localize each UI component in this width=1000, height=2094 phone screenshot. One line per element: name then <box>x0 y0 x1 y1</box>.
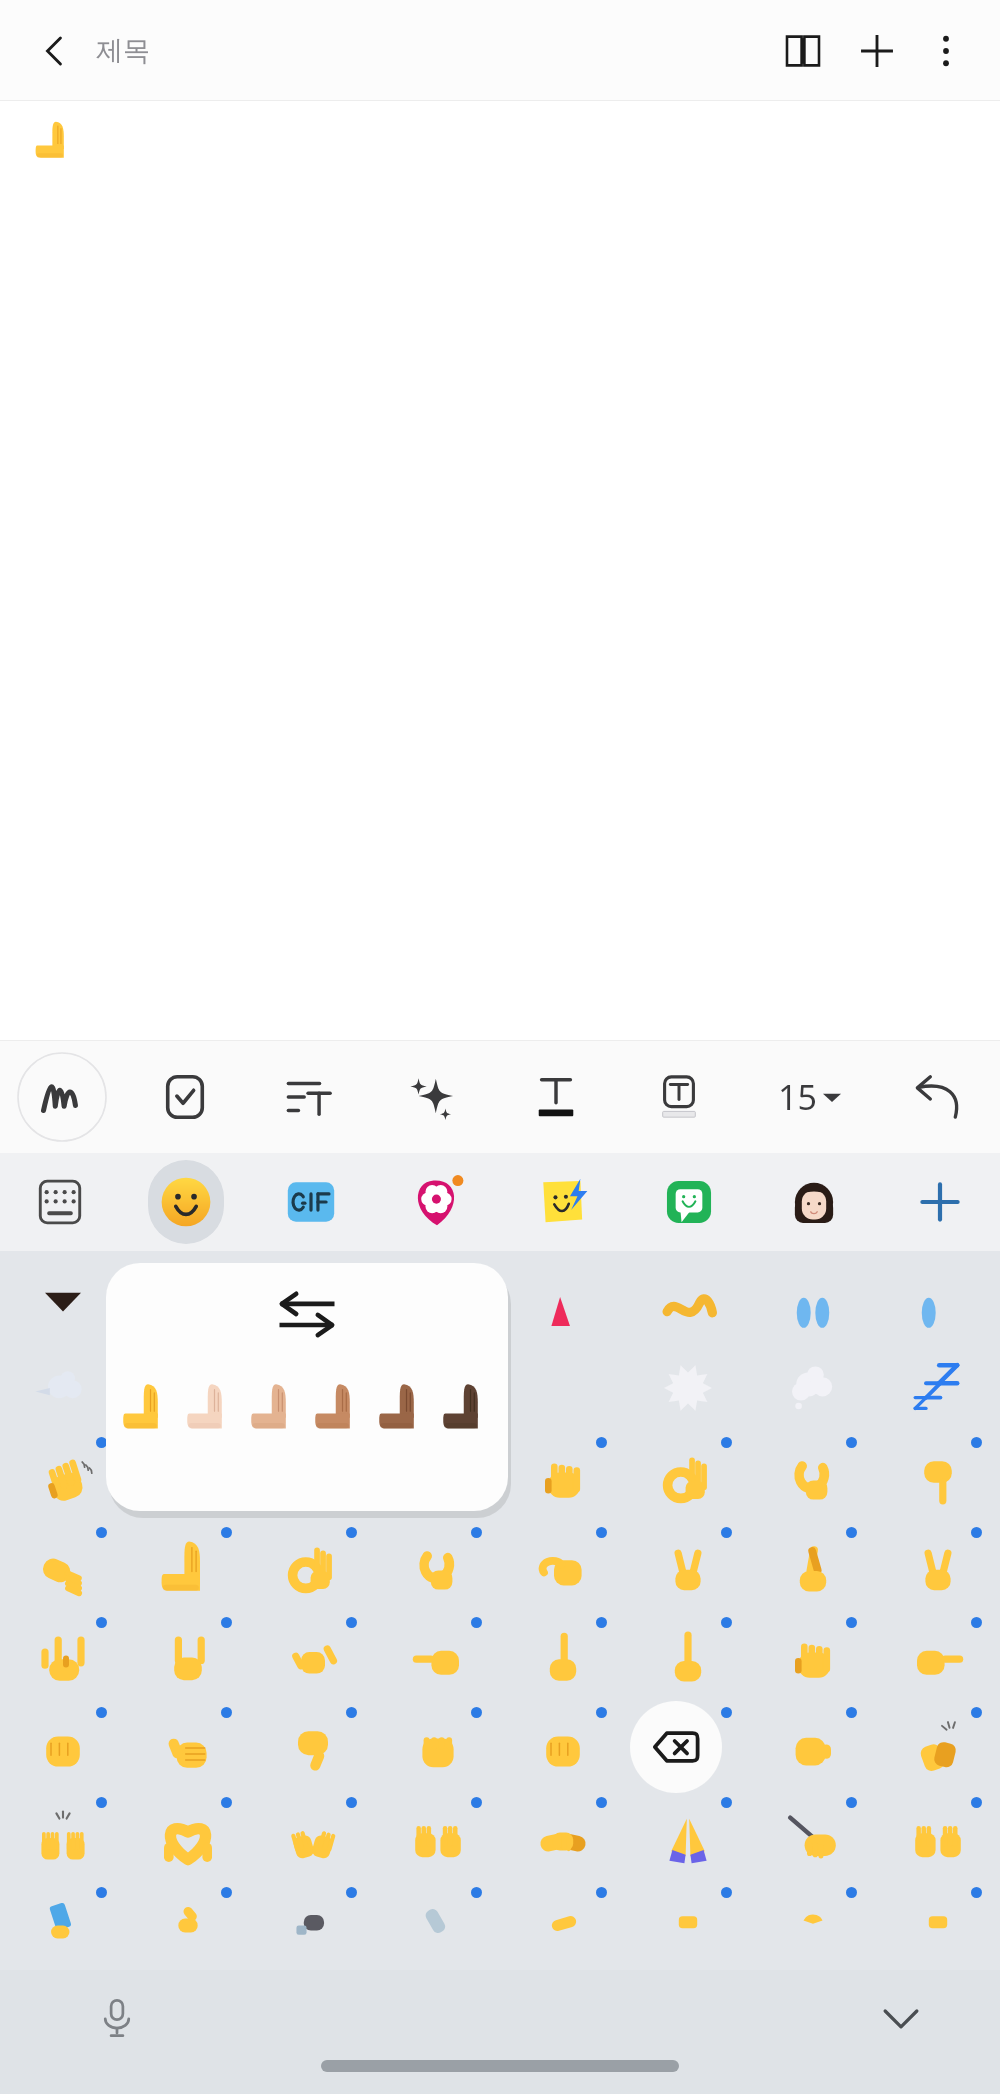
button[interactable]: Hide keyboard <box>864 1981 938 2055</box>
button[interactable]: Emoji <box>375 1613 500 1703</box>
button[interactable]: Emoji <box>750 1613 875 1703</box>
button[interactable]: Skin tone <box>372 1371 434 1445</box>
button[interactable]: Emoji <box>375 1703 500 1793</box>
button[interactable]: Emoji <box>250 1433 375 1523</box>
button[interactable]: Emoji <box>125 1613 250 1703</box>
button[interactable]: Emoji <box>875 1703 1000 1793</box>
button[interactable] <box>250 1257 375 1343</box>
button[interactable]: AR Emoji <box>776 1160 852 1244</box>
button[interactable] <box>750 1257 875 1343</box>
staticText: 15 <box>778 1074 817 1120</box>
button[interactable]: Emoji <box>375 1793 500 1883</box>
button[interactable]: Emoji <box>500 1883 625 1957</box>
button[interactable]: Skin tone <box>436 1371 498 1445</box>
button[interactable] <box>0 1257 125 1343</box>
button[interactable]: Emoji <box>750 1523 875 1613</box>
button[interactable]: Text color <box>508 1049 604 1145</box>
button[interactable]: Skin tone <box>244 1371 306 1445</box>
button[interactable]: Emoji <box>500 1343 625 1433</box>
button[interactable]: Emoji <box>625 1613 750 1703</box>
button[interactable]: Emoji <box>375 1343 500 1433</box>
button[interactable]: Backspace <box>630 1701 722 1793</box>
button[interactable]: Emoji <box>500 1793 625 1883</box>
button[interactable]: Highlight <box>631 1049 727 1145</box>
button[interactable]: Skin tone <box>308 1371 370 1445</box>
button[interactable]: Emoji <box>375 1433 500 1523</box>
button[interactable]: Emoji <box>125 1523 250 1613</box>
button[interactable] <box>375 1257 500 1343</box>
button[interactable]: Emoji <box>625 1703 750 1793</box>
button[interactable]: Emoji <box>0 1433 125 1523</box>
button[interactable]: Add sticker pack <box>902 1164 978 1240</box>
button[interactable]: Emoji <box>875 1343 1000 1433</box>
button[interactable]: Emoji <box>250 1883 375 1957</box>
button[interactable]: Emoji <box>125 1343 250 1433</box>
button[interactable]: Emoji <box>625 1883 750 1957</box>
button[interactable]: Emoji <box>625 1433 750 1523</box>
button[interactable]: Emoji <box>0 1703 125 1793</box>
button[interactable]: Emoji <box>125 1703 250 1793</box>
button[interactable]: Emoji <box>148 1160 224 1244</box>
button[interactable] <box>125 1257 250 1343</box>
button[interactable]: Skin tone <box>180 1371 242 1445</box>
button[interactable]: Emoji <box>750 1883 875 1957</box>
button[interactable]: Emoji <box>500 1433 625 1523</box>
button[interactable] <box>625 1257 750 1343</box>
button[interactable]: Emoji <box>0 1883 125 1957</box>
staticText: 제목 <box>96 34 150 68</box>
button[interactable]: Stickers <box>399 1160 475 1244</box>
button[interactable]: Emoji <box>125 1433 250 1523</box>
button[interactable]: Emoji <box>375 1523 500 1613</box>
button[interactable]: Emoji <box>0 1793 125 1883</box>
button[interactable]: Emoji <box>625 1793 750 1883</box>
button[interactable]: Paragraph style <box>261 1049 357 1145</box>
button[interactable]: Emoji <box>250 1793 375 1883</box>
button[interactable]: Emoji <box>875 1523 1000 1613</box>
button[interactable]: Emoji <box>625 1523 750 1613</box>
button[interactable]: Reading view <box>766 14 840 88</box>
button[interactable]: Emoji <box>875 1793 1000 1883</box>
button[interactable]: Emoji stickers <box>525 1160 601 1244</box>
button[interactable]: Voice input <box>80 1981 154 2055</box>
button[interactable]: Bitmoji <box>651 1160 727 1244</box>
button[interactable]: Add <box>840 14 914 88</box>
button[interactable]: Emoji <box>750 1793 875 1883</box>
button[interactable]: Emoji <box>0 1613 125 1703</box>
button[interactable]: Emoji <box>125 1883 250 1957</box>
button[interactable]: Emoji <box>750 1703 875 1793</box>
button[interactable]: Emoji <box>0 1343 125 1433</box>
button[interactable]: Emoji <box>750 1343 875 1433</box>
button[interactable]: Emoji <box>875 1433 1000 1523</box>
button[interactable] <box>500 1257 625 1343</box>
button[interactable]: Emoji <box>250 1523 375 1613</box>
button[interactable]: More options <box>914 19 978 83</box>
button[interactable]: Emoji <box>500 1703 625 1793</box>
button[interactable]: Checklist <box>137 1049 233 1145</box>
button[interactable]: Emoji <box>625 1343 750 1433</box>
button[interactable]: Undo <box>890 1049 986 1145</box>
button[interactable]: Emoji <box>875 1883 1000 1957</box>
button[interactable]: Emoji <box>500 1523 625 1613</box>
button[interactable]: Emoji <box>0 1523 125 1613</box>
button[interactable]: Emoji <box>250 1703 375 1793</box>
button[interactable] <box>875 1257 1000 1343</box>
button[interactable]: 15 <box>755 1049 863 1145</box>
button[interactable]: Emoji <box>875 1613 1000 1703</box>
button[interactable]: Skin tone <box>116 1371 178 1445</box>
button[interactable]: Keyboard <box>22 1160 98 1244</box>
button[interactable]: Emoji <box>125 1793 250 1883</box>
button[interactable]: GIF <box>273 1160 349 1244</box>
button[interactable]: Emoji <box>250 1613 375 1703</box>
button[interactable]: Handwriting <box>14 1049 110 1145</box>
button[interactable]: Emoji <box>250 1343 375 1433</box>
button[interactable]: Emoji <box>375 1883 500 1957</box>
button[interactable]: Emoji <box>500 1613 625 1703</box>
button[interactable]: AI assist <box>384 1049 480 1145</box>
button[interactable]: Back <box>20 16 90 86</box>
button[interactable]: Emoji <box>750 1433 875 1523</box>
